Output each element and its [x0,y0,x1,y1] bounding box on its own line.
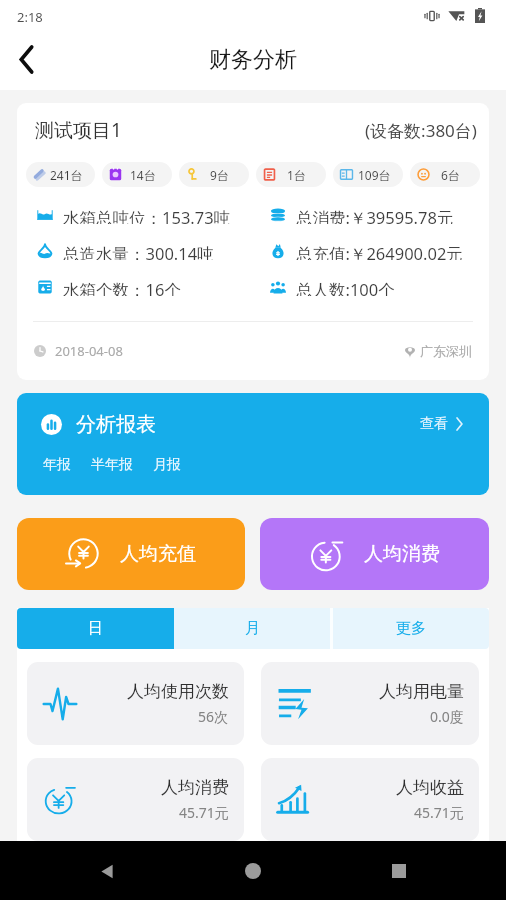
staticText: 水箱总吨位：153.73吨 [63,206,231,224]
staticText: 半年报 [91,456,133,474]
staticText: 总消费:￥39595.78元 [296,206,454,224]
staticText: 2018-04-08 [55,342,123,360]
staticText: 6台 [441,167,460,183]
staticText: 总人数:100个 [296,278,395,296]
staticText: 查看 [420,415,448,433]
staticText: 9台 [210,167,229,183]
button[interactable]: Back [2,35,50,83]
button[interactable]: 人均收益 [261,758,479,841]
staticText: 广东深圳 [420,343,472,359]
button[interactable]: Back [85,849,129,893]
staticText: 1台 [287,167,306,183]
staticText: 月报 [153,456,181,474]
button[interactable]: Recents [377,849,421,893]
staticText: 月 [245,619,260,638]
button[interactable]: 109台 [333,162,403,187]
staticText: 45.71元 [414,803,464,822]
staticText: 56次 [198,707,229,726]
button[interactable]: 人均使用次数 [27,662,244,745]
staticText: 总造水量：300.14吨 [63,242,214,260]
staticText: 人均消费 [161,777,229,798]
staticText: 241台 [50,167,83,183]
button[interactable]: 月报 [153,456,181,474]
staticText: 更多 [396,619,426,638]
staticText: 分析报表 [76,412,156,437]
button[interactable]: 人均消费 [27,758,244,841]
button[interactable]: 241台 [26,162,95,187]
button[interactable]: 人均用电量 [261,662,479,745]
staticText: 人均收益 [396,777,464,798]
staticText: 109台 [358,167,391,183]
staticText: 日 [88,619,103,638]
staticText: 财务分析 [209,46,297,74]
button[interactable]: Home [231,849,275,893]
staticText: (设备数:380台) [365,119,477,142]
button[interactable]: 9台 [179,162,249,187]
staticText: 0.0度 [430,707,464,726]
staticText: 测试项目1 [35,117,122,143]
button[interactable]: 6台 [410,162,480,187]
button[interactable]: 14台 [102,162,172,187]
staticText: 人均使用次数 [127,681,229,702]
button[interactable]: 半年报 [91,456,133,474]
staticText: 45.71元 [179,803,229,822]
staticText: 2:18 [17,8,43,26]
button[interactable]: 人均消费 [260,518,489,590]
staticText: 水箱个数：16个 [63,278,181,296]
button[interactable]: 查看 [420,415,463,433]
button[interactable]: 日 [17,608,174,649]
staticText: 人均充值 [120,542,196,566]
button[interactable]: 1台 [256,162,326,187]
button[interactable]: 分析报表 [17,393,489,495]
button[interactable]: 年报 [43,456,71,474]
staticText: 14台 [130,167,156,183]
staticText: 总充值:￥264900.02元 [296,242,463,260]
staticText: 人均用电量 [379,681,464,702]
button[interactable]: 测试项目1 [17,103,489,380]
staticText: 人均消费 [364,542,440,566]
button[interactable]: 月 [174,608,330,649]
button[interactable]: 更多 [333,608,489,649]
staticText: 年报 [43,456,71,474]
button[interactable]: 人均充值 [17,518,245,590]
